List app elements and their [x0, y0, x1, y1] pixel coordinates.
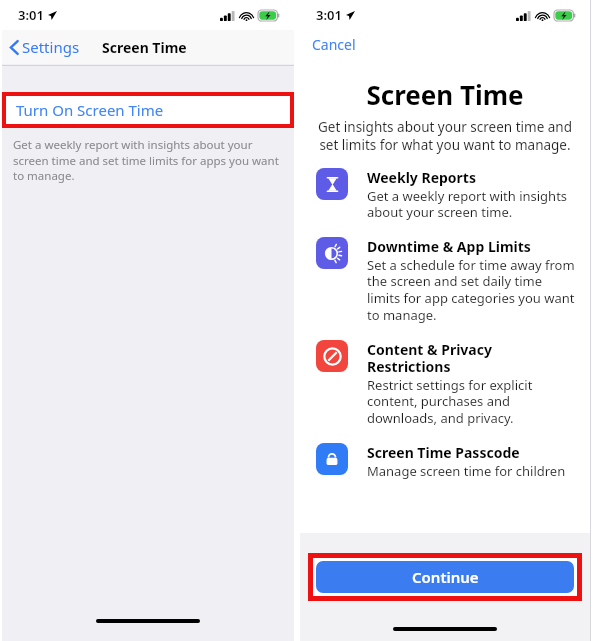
button[interactable]: Settings [8, 33, 82, 61]
staticText: Manage screen time for children [367, 462, 566, 480]
staticText: Content & Privacy Restrictions [367, 340, 576, 376]
staticText: Restrict settings for explicit content, … [367, 376, 576, 427]
staticText: Weekly Reports [367, 168, 476, 187]
staticText: Screen Time [300, 77, 590, 112]
staticText: Set a schedule for time away from the sc… [367, 256, 576, 324]
staticText: 3:01 [18, 6, 44, 24]
staticText: Turn On Screen Time [16, 100, 164, 120]
staticText: Continue [412, 567, 479, 587]
staticText: Get a weekly report with insights about … [13, 137, 283, 183]
staticText: Screen Time [102, 38, 187, 57]
button[interactable]: Cancel [306, 32, 362, 57]
staticText: Downtime & App Limits [367, 237, 531, 256]
staticText: Screen Time Passcode [367, 443, 520, 462]
staticText: Get a weekly report with insights about … [367, 187, 576, 221]
staticText: Settings [22, 37, 80, 57]
staticText: 3:01 [316, 6, 342, 24]
button[interactable]: Turn On Screen Time [6, 96, 290, 124]
staticText: Get insights about your screen time and … [318, 118, 572, 154]
button[interactable]: Continue [316, 561, 574, 593]
